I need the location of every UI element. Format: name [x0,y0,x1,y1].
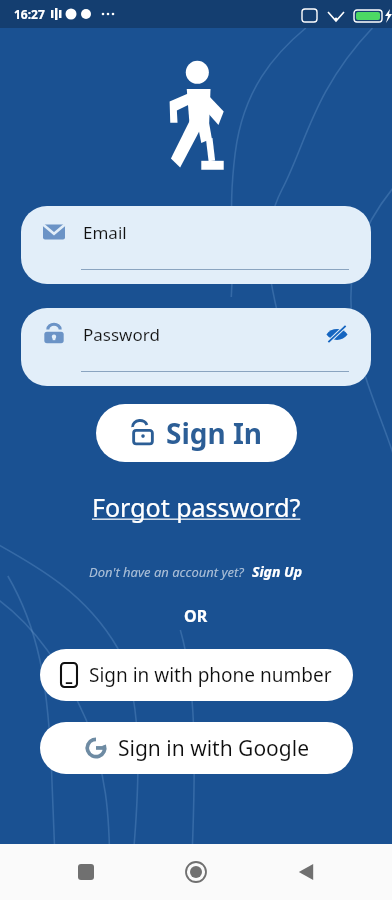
button[interactable]: Back [282,848,330,896]
staticText: Forgot password? [92,490,301,524]
staticText: Don't have an account yet? [89,563,244,581]
staticText: Sign in with Google [118,734,309,763]
button[interactable]: Forgot password? [84,488,309,526]
staticText: Password [83,323,160,346]
button[interactable]: Sign in with Google [40,722,353,774]
staticText: Sign in with phone number [89,662,332,688]
staticText: 16:27 [14,6,45,22]
staticText: Email [83,221,127,244]
button[interactable]: Show password [323,320,351,348]
button[interactable]: Password [21,308,371,386]
staticText: OR [184,605,208,627]
button[interactable]: Recent apps [62,848,110,896]
staticText: Sign In [166,414,263,452]
button[interactable]: Sign In [96,404,297,462]
button[interactable]: Sign in with phone number [40,649,353,701]
button[interactable]: Sign Up [252,562,303,581]
button[interactable]: Email [21,206,371,284]
button[interactable]: Home [172,848,220,896]
staticText: Sign Up [252,562,303,581]
